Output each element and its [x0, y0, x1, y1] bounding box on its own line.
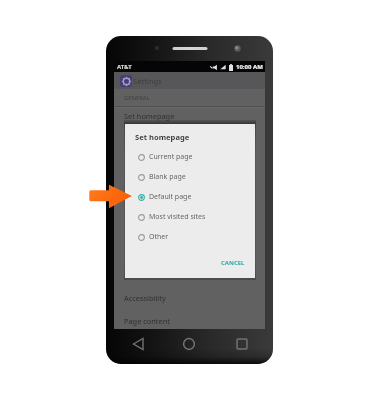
button[interactable]: Recent apps — [234, 336, 250, 352]
staticText: Page content — [124, 316, 170, 326]
button[interactable]: Page content — [114, 312, 265, 329]
staticText: CANCEL — [221, 259, 245, 267]
staticText: AT&T — [117, 63, 132, 71]
button[interactable]: Accessibility — [114, 283, 265, 312]
button[interactable]: Other — [125, 227, 255, 247]
button[interactable]: Settings — [114, 72, 265, 89]
button[interactable]: Back — [131, 336, 147, 352]
button[interactable]: Blank page — [125, 167, 255, 187]
staticText: Most visited sites — [149, 212, 206, 222]
staticText: Blank page — [149, 172, 186, 182]
staticText: Accessibility — [124, 293, 166, 303]
staticText: Settings — [133, 76, 162, 86]
button[interactable]: Current page — [125, 147, 255, 167]
staticText: Set homepage — [124, 111, 175, 121]
button[interactable]: Home — [181, 336, 197, 352]
staticText: Set homepage — [135, 132, 190, 142]
button[interactable]: Set homepage — [114, 108, 265, 124]
staticText: GENERAL — [124, 94, 150, 102]
button[interactable]: Default page — [125, 187, 255, 207]
staticText: Default page — [149, 192, 192, 202]
button[interactable]: CANCEL — [211, 255, 255, 271]
staticText: Current page — [149, 152, 193, 162]
staticText: 10:00 AM — [236, 63, 263, 71]
button[interactable]: Most visited sites — [125, 207, 255, 227]
staticText: Other — [149, 232, 169, 242]
